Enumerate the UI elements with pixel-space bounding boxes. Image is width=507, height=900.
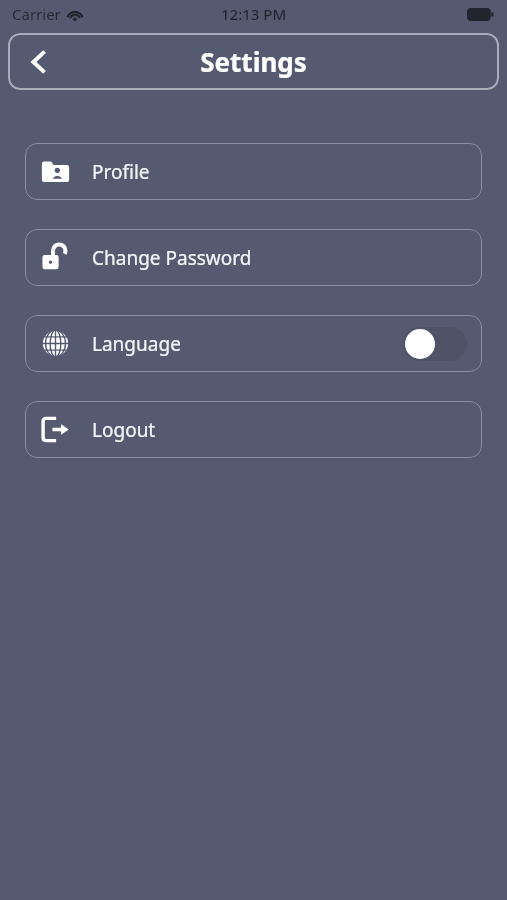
button[interactable]: Language [25, 315, 482, 372]
button[interactable]: Logout [25, 401, 482, 458]
staticText: Language [92, 331, 181, 357]
button[interactable]: Profile [25, 143, 482, 200]
staticText: Settings [200, 44, 307, 79]
staticText: Carrier [12, 4, 61, 24]
staticText: 12:13 PM [221, 4, 287, 24]
staticText: Profile [92, 159, 150, 185]
staticText: Change Password [92, 245, 252, 271]
staticText: Logout [92, 417, 156, 443]
button[interactable]: Language toggle [403, 327, 467, 361]
button[interactable]: Back [16, 39, 62, 85]
button[interactable]: Change Password [25, 229, 482, 286]
